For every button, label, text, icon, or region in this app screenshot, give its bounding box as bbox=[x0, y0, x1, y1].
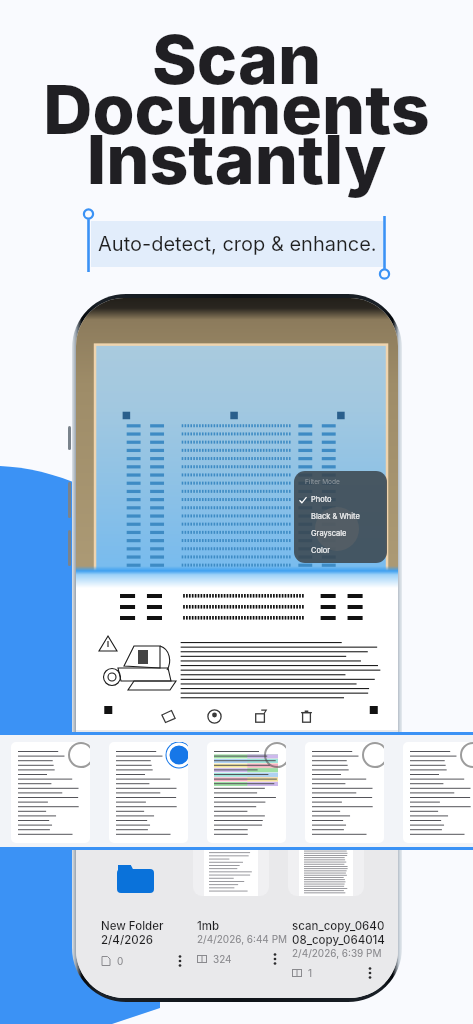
button[interactable]: Filter bbox=[202, 704, 226, 728]
button[interactable]: More options bbox=[361, 964, 379, 982]
button[interactable]: Capture bbox=[315, 507, 359, 551]
staticText: Grayscale bbox=[311, 529, 347, 538]
button[interactable]: scan_copy_0640 08_copy_064014 bbox=[292, 848, 387, 982]
button[interactable]: Grayscale bbox=[294, 525, 387, 542]
button[interactable]: 1mb bbox=[197, 848, 292, 968]
staticText: Black & White bbox=[311, 512, 360, 521]
button[interactable]: Photo bbox=[294, 491, 387, 508]
button[interactable] bbox=[403, 742, 473, 843]
button[interactable]: More options bbox=[171, 952, 189, 970]
button[interactable]: Rotate bbox=[248, 704, 272, 728]
staticText: 2/4/2026, 6:44 PM bbox=[197, 933, 288, 945]
button[interactable]: Color bbox=[294, 542, 387, 559]
button[interactable]: Crop bbox=[156, 704, 180, 728]
staticText: scan_copy_0640 08_copy_064014 bbox=[292, 919, 385, 947]
button[interactable] bbox=[11, 742, 90, 843]
staticText: Photo bbox=[311, 495, 332, 504]
button[interactable]: Auto-detect, crop & enhance. bbox=[91, 221, 383, 267]
staticText: Auto-detect, crop & enhance. bbox=[98, 232, 377, 256]
button[interactable]: Delete bbox=[294, 704, 318, 728]
button[interactable]: More options bbox=[266, 950, 284, 968]
button[interactable] bbox=[207, 742, 286, 843]
staticText: New Folder 2/4/2026 bbox=[101, 919, 164, 947]
button[interactable]: Black & White bbox=[294, 508, 387, 525]
button[interactable]: New Folder 2/4/2026 bbox=[101, 848, 197, 970]
staticText: Color bbox=[311, 546, 331, 555]
staticText: 1 bbox=[308, 967, 313, 979]
staticText: 324 bbox=[213, 953, 232, 965]
staticText: 0 bbox=[117, 955, 124, 967]
button[interactable] bbox=[305, 742, 384, 843]
staticText: Filter Mode bbox=[305, 478, 340, 486]
staticText: 2/4/2026, 6:39 PM bbox=[292, 947, 382, 959]
staticText: Scan Documents Instantly bbox=[0, 18, 473, 200]
staticText: 1mb bbox=[197, 919, 220, 933]
button[interactable] bbox=[109, 742, 188, 843]
